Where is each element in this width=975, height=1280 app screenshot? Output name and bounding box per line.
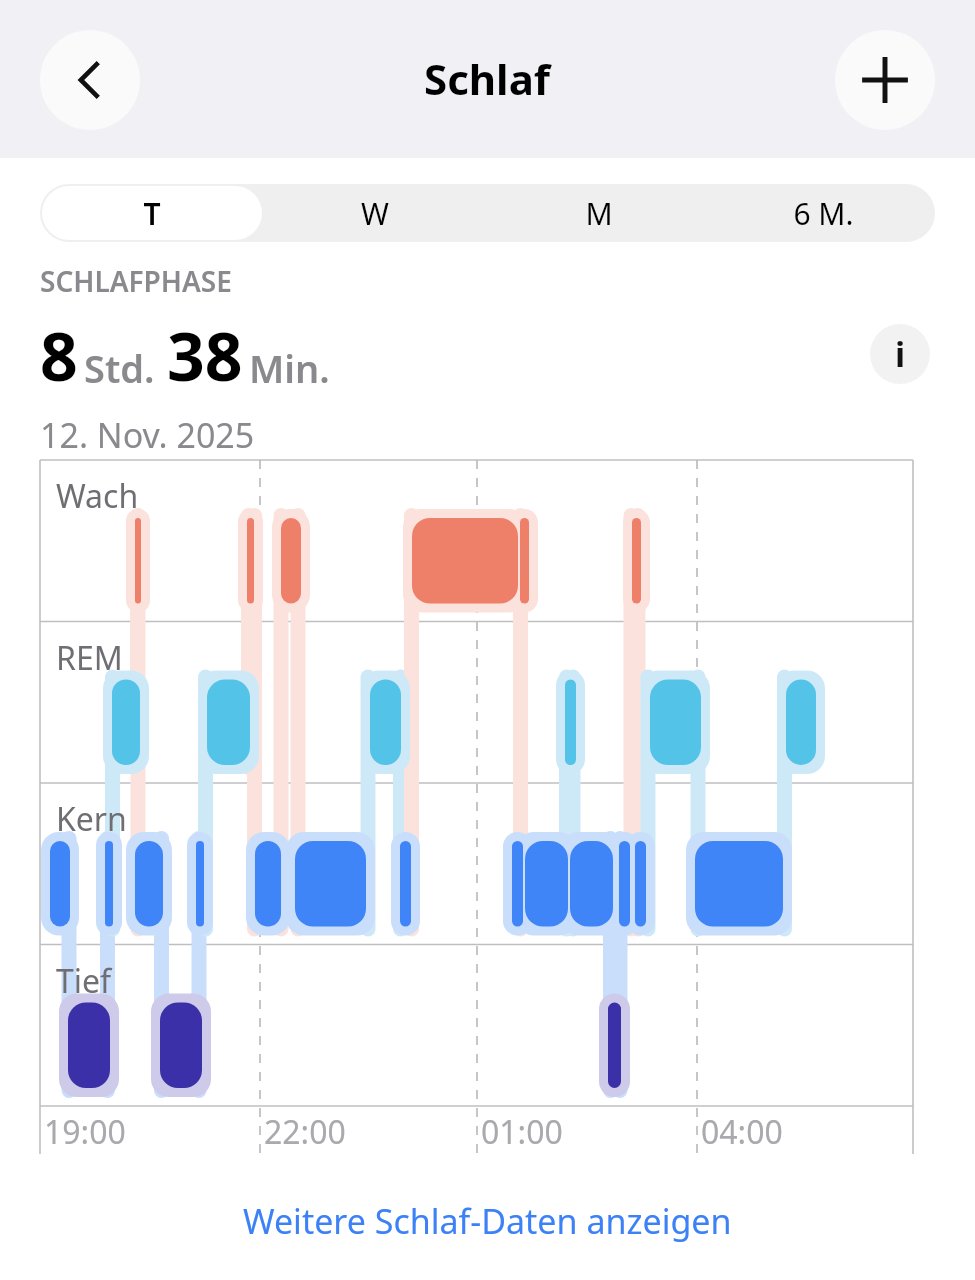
- staticText: REM: [56, 636, 123, 680]
- staticText: 19:00: [44, 1110, 126, 1154]
- staticText: Wach: [56, 474, 139, 518]
- staticText: Kern: [56, 797, 127, 841]
- staticText: Min.: [249, 342, 330, 394]
- staticText: Tief: [56, 959, 112, 1003]
- staticText: SCHLAFPHASE: [40, 262, 232, 300]
- staticText: Std.: [84, 342, 155, 394]
- button[interactable]: Zurück: [40, 30, 140, 130]
- button[interactable]: Weitere Schlaf-Daten anzeigen: [0, 1198, 975, 1244]
- button[interactable]: Information: [870, 324, 930, 384]
- staticText: 8: [40, 310, 78, 400]
- button[interactable]: W: [263, 184, 487, 242]
- staticText: 22:00: [264, 1110, 346, 1154]
- staticText: Schlaf: [424, 50, 551, 107]
- staticText: i: [895, 331, 906, 377]
- button[interactable]: M: [487, 184, 711, 242]
- button[interactable]: Hinzufügen: [835, 30, 935, 130]
- staticText: M: [585, 193, 613, 234]
- staticText: 6 M.: [793, 193, 854, 234]
- staticText: W: [361, 193, 389, 234]
- staticText: 38: [167, 310, 243, 400]
- staticText: T: [143, 193, 161, 234]
- button[interactable]: 6 M.: [711, 184, 935, 242]
- staticText: 01:00: [481, 1110, 563, 1154]
- staticText: 12. Nov. 2025: [40, 412, 255, 458]
- staticText: Weitere Schlaf-Daten anzeigen: [243, 1198, 732, 1244]
- staticText: 04:00: [701, 1110, 783, 1154]
- button[interactable]: T: [40, 184, 263, 242]
